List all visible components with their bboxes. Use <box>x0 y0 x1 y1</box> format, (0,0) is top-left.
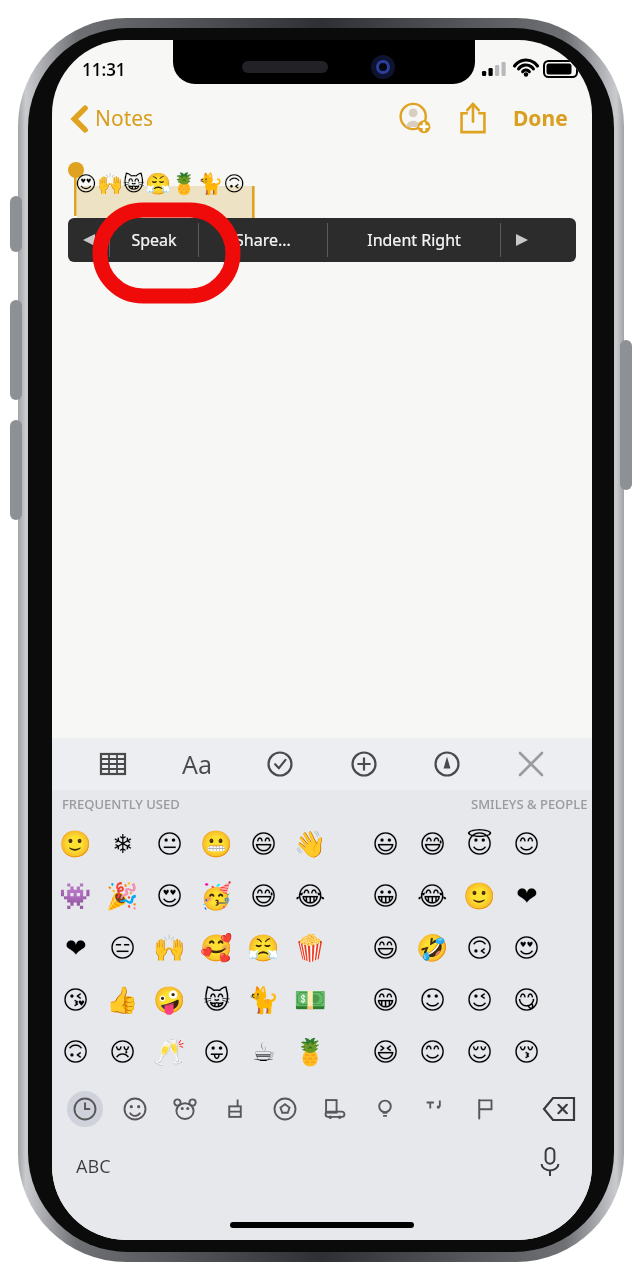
button[interactable]: Animals <box>160 1086 210 1132</box>
button[interactable]: 😐 <box>146 818 193 870</box>
button[interactable]: 😊 <box>503 818 550 870</box>
button[interactable]: Indent Right <box>328 218 500 262</box>
button[interactable]: 😂 <box>409 870 456 922</box>
button[interactable]: 🙂 <box>52 818 99 870</box>
button[interactable]: Recent <box>60 1086 110 1132</box>
staticText: 😍 <box>156 881 184 911</box>
staticText: 🥂 <box>153 1037 186 1067</box>
button[interactable]: Share <box>451 96 495 140</box>
button[interactable]: Done <box>507 100 574 137</box>
button[interactable]: 🍿 <box>287 922 334 974</box>
button[interactable]: 😄 <box>240 818 287 870</box>
button[interactable]: 😑 <box>99 922 146 974</box>
staticText: 😌 <box>466 1037 494 1067</box>
button[interactable]: 🍍 <box>287 1026 334 1078</box>
button[interactable]: 🥂 <box>146 1026 193 1078</box>
button[interactable]: 😉 <box>456 974 503 1026</box>
staticText: Indent Right <box>367 229 461 251</box>
button[interactable]: 😅 <box>409 818 456 870</box>
button[interactable]: 🙌 <box>146 922 193 974</box>
button[interactable]: Aa <box>175 742 219 786</box>
staticText: 😬 <box>200 829 233 859</box>
button[interactable]: 🥳 <box>193 870 240 922</box>
staticText: Aa <box>182 747 213 781</box>
button[interactable]: Activity <box>260 1086 310 1132</box>
button[interactable]: 😃 <box>362 818 409 870</box>
button[interactable]: 😂 <box>287 870 334 922</box>
button[interactable]: 🐈 <box>240 974 287 1026</box>
button[interactable]: 😅 <box>240 870 287 922</box>
button[interactable]: ❄️ <box>99 818 146 870</box>
button[interactable]: 😍 <box>146 870 193 922</box>
button[interactable]: 🙃 <box>456 922 503 974</box>
button[interactable]: Dictate <box>530 1142 570 1182</box>
staticText: 🎉 <box>106 881 139 911</box>
button[interactable]: Delete <box>532 1086 586 1132</box>
staticText: 😀 <box>372 881 400 911</box>
staticText: Done <box>513 104 568 133</box>
staticText: 😸 <box>203 985 231 1015</box>
button[interactable]: 💵 <box>287 974 334 1026</box>
button[interactable]: 🙂 <box>456 870 503 922</box>
button[interactable]: 😘 <box>52 974 99 1026</box>
button[interactable]: 😄 <box>362 922 409 974</box>
staticText: 🥳 <box>200 881 233 911</box>
button[interactable]: Checklist <box>258 742 302 786</box>
staticText: 😅 <box>419 829 447 859</box>
button[interactable]: Speak <box>110 218 198 262</box>
button[interactable]: 😬 <box>193 818 240 870</box>
button[interactable]: Symbols <box>410 1086 460 1132</box>
button[interactable]: 🎉 <box>99 870 146 922</box>
button[interactable]: ABC <box>66 1146 121 1187</box>
button[interactable]: 🤣 <box>409 922 456 974</box>
button[interactable]: Table <box>91 742 135 786</box>
button[interactable]: 😌 <box>456 1026 503 1078</box>
button[interactable]: 😍 <box>503 922 550 974</box>
button[interactable]: ☺️ <box>409 974 456 1026</box>
button[interactable]: Add <box>342 742 386 786</box>
button[interactable]: 😚 <box>503 1026 550 1078</box>
button[interactable]: ☕ <box>240 1026 287 1078</box>
button[interactable]: Close <box>509 742 553 786</box>
staticText: 11:31 <box>82 58 126 81</box>
button[interactable]: 😸 <box>193 974 240 1026</box>
button[interactable]: 👋 <box>287 818 334 870</box>
button[interactable]: 👾 <box>52 870 99 922</box>
button[interactable]: 😀 <box>362 870 409 922</box>
button[interactable]: Markup <box>425 742 469 786</box>
button[interactable]: Food <box>210 1086 260 1132</box>
button[interactable]: Notes <box>66 100 160 137</box>
button[interactable]: 😋 <box>503 974 550 1026</box>
button[interactable]: 😁 <box>362 974 409 1026</box>
button[interactable]: Add People <box>393 96 437 140</box>
button[interactable]: 😆 <box>362 1026 409 1078</box>
button[interactable]: 🥰 <box>193 922 240 974</box>
button[interactable]: Objects <box>360 1086 410 1132</box>
staticText: 😘 <box>62 985 90 1015</box>
staticText: SMILEYS & PEOPLE <box>471 795 588 813</box>
staticText: 👋 <box>294 829 327 859</box>
staticText: 😛 <box>203 1037 231 1067</box>
button[interactable]: ❤️ <box>503 870 550 922</box>
button[interactable]: Flags <box>460 1086 510 1132</box>
button[interactable]: 🙃 <box>52 1026 99 1078</box>
staticText: 😃 <box>372 829 400 859</box>
button[interactable]: Share... <box>199 218 327 262</box>
button[interactable]: 👍 <box>99 974 146 1026</box>
button[interactable]: 🤪 <box>146 974 193 1026</box>
button[interactable]: Smileys <box>110 1086 160 1132</box>
staticText: 😆 <box>372 1037 400 1067</box>
staticText: 😍🙌😸😤🍍🐈🙃 <box>75 172 246 197</box>
button[interactable]: Previous <box>68 218 109 262</box>
button[interactable]: 😊 <box>409 1026 456 1078</box>
staticText: 😑 <box>109 933 137 963</box>
button[interactable]: Next <box>501 218 542 262</box>
staticText: 🥰 <box>200 933 233 963</box>
button[interactable]: 😤 <box>240 922 287 974</box>
button[interactable]: 😢 <box>99 1026 146 1078</box>
button[interactable]: 😛 <box>193 1026 240 1078</box>
staticText: ABC <box>76 1154 111 1179</box>
button[interactable]: ❤️ <box>52 922 99 974</box>
button[interactable]: 😇 <box>456 818 503 870</box>
button[interactable]: Travel <box>310 1086 360 1132</box>
